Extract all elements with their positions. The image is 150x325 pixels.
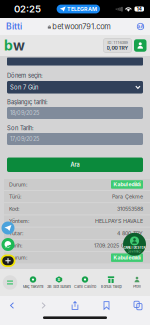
button[interactable]: 18/09/2025: [7, 107, 143, 119]
staticText: Dönem seçin:: [7, 72, 43, 79]
button[interactable]: Forward: [35, 298, 51, 312]
button[interactable]: Maç Takvimi: [20, 272, 46, 293]
staticText: 17/09/2025: [10, 136, 39, 142]
button[interactable]: Canlı Casino: [72, 272, 98, 293]
staticText: Kabul edildi: [113, 181, 140, 187]
staticText: betwoon791.com: [52, 22, 111, 31]
button[interactable]: S: [46, 272, 72, 293]
staticText: Bonus Talep: [100, 284, 121, 289]
button[interactable]: Tabs: [130, 298, 146, 312]
staticText: w: [13, 37, 25, 54]
staticText: Maç Takvimi: [22, 284, 43, 289]
staticText: Çevrimiçi: [127, 250, 141, 253]
staticText: HELLPAYS HAVALE: [95, 218, 143, 224]
staticText: 4 800 TRY: [117, 230, 143, 236]
button[interactable]: Bookmarks: [98, 298, 114, 312]
staticText: Yöntem:: [9, 218, 30, 224]
button[interactable]: WhatsApp: [1, 238, 14, 251]
button[interactable]: Back: [4, 298, 20, 312]
button[interactable]: Bonus Talep: [98, 272, 124, 293]
staticText: 17.09.2025 02:46:49: [94, 242, 143, 249]
staticText: CANLI DESTEK: [123, 246, 145, 249]
staticText: Kod:: [9, 206, 20, 212]
staticText: Son Tarih:: [7, 124, 34, 132]
button[interactable]: Son 7 Gün: [7, 81, 143, 93]
staticText: 3B Slot Sultanı: [47, 284, 71, 289]
staticText: Son 7 Gün: [10, 84, 38, 91]
staticText: Canlı Casino: [74, 284, 96, 289]
button[interactable]: Menu: [0, 272, 20, 293]
staticText: 0,00 TRY: [106, 45, 128, 51]
button[interactable]: betwoon791.com: [44, 20, 115, 33]
staticText: Bitti: [6, 21, 22, 32]
staticText: 14: [137, 6, 142, 12]
button[interactable]: Live support: [123, 233, 146, 256]
staticText: Türü:: [9, 193, 22, 200]
staticText: Ara: [70, 161, 79, 168]
staticText: ID: 1116389: [107, 40, 127, 45]
staticText: Tarih:: [9, 242, 23, 249]
button[interactable]: More: [0, 254, 15, 267]
button[interactable]: Telegram: [1, 221, 14, 234]
staticText: Tutar:: [9, 230, 24, 236]
button[interactable]: Profil: [124, 272, 150, 293]
staticText: b: [4, 37, 13, 54]
staticText: Kabul edildi: [113, 255, 140, 261]
button[interactable]: Bitti: [3, 18, 25, 35]
staticText: 02:25: [14, 3, 41, 15]
button[interactable]: 17/09/2025: [7, 133, 143, 145]
staticText: S: [57, 277, 60, 282]
staticText: 18/09/2025: [10, 110, 39, 116]
button[interactable]: Share: [67, 298, 83, 312]
staticText: aA: [137, 24, 143, 29]
staticText: Başlangıç tarihi:: [7, 98, 48, 106]
button[interactable]: Ara: [7, 157, 143, 172]
button[interactable]: Account: [134, 39, 146, 52]
staticText: Durum:: [9, 254, 28, 261]
staticText: Durum:: [9, 181, 28, 188]
staticText: 310553588: [117, 206, 143, 212]
staticText: Para Çekme: [112, 193, 143, 200]
staticText: TELEGRAM: [67, 6, 97, 12]
staticText: Profil: [133, 284, 141, 289]
button[interactable]: Page settings: [134, 20, 147, 32]
